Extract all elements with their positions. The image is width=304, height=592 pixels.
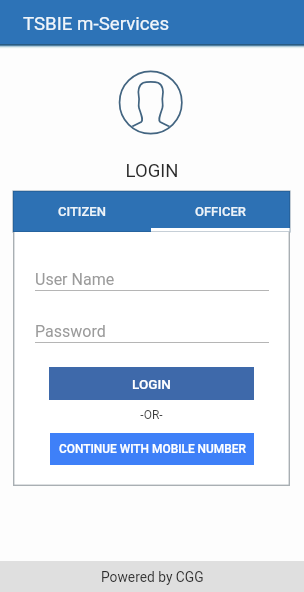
button[interactable]: User Name	[35, 270, 269, 291]
staticText: CITIZEN	[58, 204, 106, 219]
staticText: User Name	[35, 270, 115, 289]
staticText: CONTINUE WITH MOBILE NUMBER	[59, 442, 246, 456]
staticText: OFFICER	[195, 204, 246, 219]
button[interactable]: TSBIE m-Services	[0, 0, 304, 44]
staticText: -OR-	[13, 408, 290, 422]
button[interactable]: CITIZEN	[13, 191, 151, 232]
other: Account	[119, 70, 183, 134]
button[interactable]: LOGIN	[49, 367, 254, 400]
button[interactable]: OFFICER	[151, 191, 290, 232]
staticText: Password	[35, 322, 106, 341]
staticText: LOGIN	[0, 160, 304, 182]
button[interactable]: Password	[35, 322, 269, 343]
staticText: LOGIN	[132, 376, 171, 392]
staticText: Powered by CGG	[101, 569, 204, 585]
button[interactable]: CONTINUE WITH MOBILE NUMBER	[50, 433, 254, 465]
staticText: TSBIE m-Services	[23, 13, 170, 35]
